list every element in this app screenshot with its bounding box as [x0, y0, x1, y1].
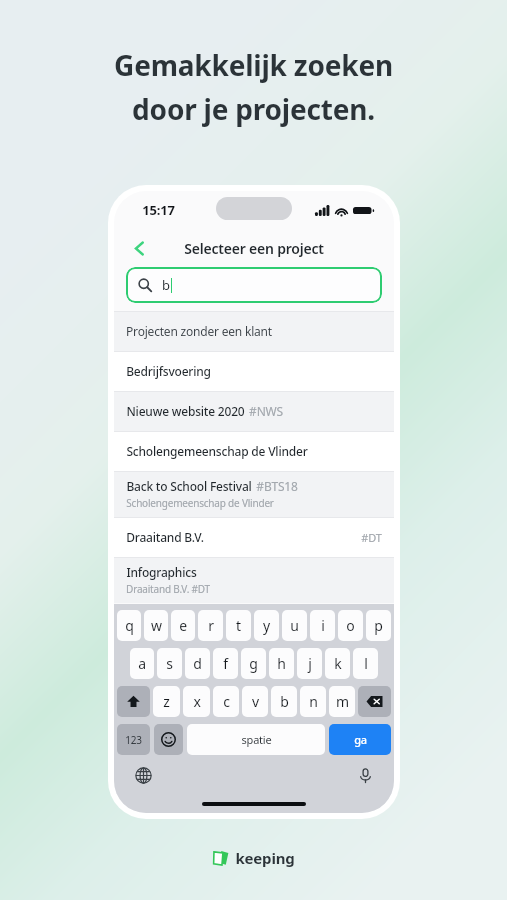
button[interactable]: r [198, 610, 223, 641]
staticText: w [151, 616, 162, 635]
staticText: t [236, 616, 241, 635]
button[interactable]: Scholengemeenschap de Vlinder [114, 431, 394, 471]
button[interactable]: a [130, 648, 154, 679]
button[interactable]: u [282, 610, 307, 641]
button[interactable]: e [171, 610, 195, 641]
button[interactable]: s [157, 648, 182, 679]
staticText: q [125, 616, 134, 635]
button[interactable]: w [144, 610, 168, 641]
button[interactable]: v [242, 686, 268, 717]
button[interactable]: Shift [117, 686, 150, 717]
staticText: keeping [235, 848, 295, 868]
button[interactable]: f [213, 648, 238, 679]
staticText: Gemakkelijk zoeken [114, 46, 393, 84]
button[interactable]: i [310, 610, 335, 641]
button[interactable]: Draaitand B.V. [114, 517, 394, 557]
staticText: j [308, 654, 312, 673]
staticText: o [346, 616, 355, 635]
staticText: b [162, 276, 170, 294]
staticText: r [208, 616, 214, 635]
staticText: ga [354, 732, 367, 747]
button[interactable]: n [300, 686, 326, 717]
button[interactable]: Bedrijfsvoering [114, 351, 394, 391]
button[interactable]: Dicteren [352, 762, 378, 788]
staticText: n [309, 692, 318, 711]
button[interactable]: p [366, 610, 391, 641]
button[interactable]: q [117, 610, 141, 641]
button[interactable]: m [329, 686, 355, 717]
staticText: l [364, 654, 368, 673]
staticText: d [193, 654, 202, 673]
staticText: m [336, 692, 349, 711]
staticText: Bedrijfsvoering [126, 363, 211, 379]
button[interactable]: t [226, 610, 251, 641]
button[interactable]: Backspace [358, 686, 391, 717]
button[interactable]: z [153, 686, 180, 717]
staticText: door je projecten. [132, 90, 375, 128]
button[interactable]: b [271, 686, 297, 717]
button[interactable]: c [213, 686, 239, 717]
staticText: Back to School Festival [126, 478, 252, 494]
staticText: Scholengemeenschap de Vlinder [126, 496, 274, 510]
button[interactable]: Nieuwe website 2020 [114, 391, 394, 431]
button[interactable]: spatie [187, 724, 325, 755]
staticText: #DT [361, 530, 382, 545]
staticText: s [166, 654, 173, 673]
button[interactable]: l [353, 648, 378, 679]
button[interactable]: Taal [130, 762, 156, 788]
staticText: b [280, 692, 289, 711]
staticText: x [193, 692, 201, 711]
staticText: g [249, 654, 258, 673]
staticText: Nieuwe website 2020 [126, 403, 245, 419]
staticText: #BTS18 [256, 478, 298, 494]
button[interactable]: Emoji [154, 724, 183, 755]
staticText: c [223, 692, 230, 711]
button[interactable]: d [185, 648, 210, 679]
staticText: 15:17 [142, 201, 175, 219]
staticText: Draaitand B.V. #DT [126, 582, 210, 596]
button[interactable]: j [297, 648, 322, 679]
button[interactable]: Projecten zonder een klant [114, 311, 394, 351]
button[interactable]: g [241, 648, 266, 679]
staticText: v [252, 692, 259, 711]
staticText: k [334, 654, 342, 673]
button[interactable]: Infographics [114, 557, 394, 603]
staticText: i [321, 616, 325, 635]
staticText: 123 [125, 733, 142, 747]
staticText: spatie [241, 732, 272, 747]
staticText: z [163, 692, 170, 711]
staticText: Infographics [126, 564, 197, 580]
staticText: #NWS [249, 403, 283, 419]
button[interactable]: x [183, 686, 210, 717]
staticText: Scholengemeenschap de Vlinder [126, 443, 308, 459]
button[interactable]: ga [329, 724, 391, 755]
staticText: p [374, 616, 383, 635]
staticText: f [223, 654, 228, 673]
staticText: h [277, 654, 286, 673]
staticText: a [138, 654, 146, 673]
staticText: y [263, 616, 270, 635]
staticText: Projecten zonder een klant [126, 323, 272, 339]
button[interactable]: b [126, 267, 382, 303]
button[interactable]: Terug [122, 231, 156, 265]
staticText: e [179, 616, 187, 635]
staticText: Selecteer een project [184, 239, 324, 258]
button[interactable]: 123 [117, 724, 150, 755]
staticText: u [290, 616, 299, 635]
staticText: Draaitand B.V. [126, 529, 204, 545]
button[interactable]: y [254, 610, 279, 641]
button[interactable]: o [338, 610, 363, 641]
button[interactable]: k [325, 648, 350, 679]
button[interactable]: h [269, 648, 294, 679]
button[interactable]: Back to School Festival [114, 471, 394, 517]
